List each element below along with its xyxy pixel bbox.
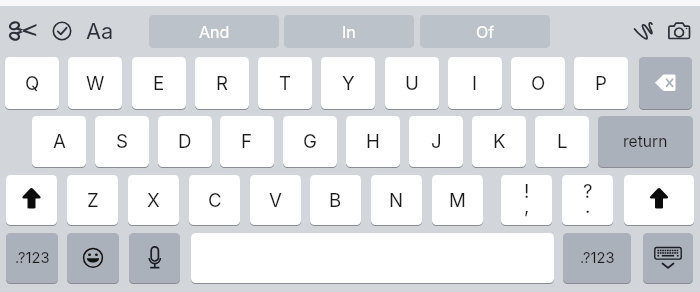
staticText: I bbox=[472, 72, 478, 95]
button[interactable]: .?123 bbox=[563, 233, 631, 283]
button[interactable]: U bbox=[385, 57, 439, 109]
staticText: K bbox=[493, 130, 506, 153]
button[interactable]: Q bbox=[5, 57, 59, 109]
staticText: And bbox=[199, 22, 230, 41]
button[interactable]: T bbox=[258, 57, 312, 109]
button[interactable]: Check bbox=[45, 14, 79, 48]
staticText: Aa bbox=[86, 18, 114, 44]
button[interactable]: X bbox=[128, 175, 179, 225]
button[interactable]: Y bbox=[321, 57, 375, 109]
button[interactable]: In bbox=[284, 15, 414, 48]
button[interactable]: I bbox=[448, 57, 502, 109]
staticText: .?123 bbox=[15, 249, 50, 267]
button[interactable]: W bbox=[68, 57, 122, 109]
button[interactable]: Shift bbox=[6, 175, 57, 225]
staticText: A bbox=[53, 130, 66, 153]
button[interactable]: J bbox=[409, 116, 463, 167]
button[interactable]: Of bbox=[420, 15, 550, 48]
button[interactable]: S bbox=[95, 116, 149, 167]
button[interactable]: M bbox=[432, 175, 483, 225]
staticText: D bbox=[178, 130, 192, 153]
staticText: X bbox=[147, 189, 160, 212]
staticText: U bbox=[405, 72, 419, 95]
staticText: R bbox=[216, 72, 229, 95]
button[interactable]: Emoji bbox=[67, 233, 119, 283]
staticText: T bbox=[279, 72, 292, 95]
staticText: ? bbox=[583, 180, 593, 203]
button[interactable]: L bbox=[535, 116, 589, 167]
staticText: J bbox=[431, 130, 442, 153]
button[interactable]: G bbox=[283, 116, 337, 167]
staticText: E bbox=[153, 72, 165, 95]
button[interactable]: A bbox=[32, 116, 86, 167]
button[interactable]: K bbox=[472, 116, 526, 167]
staticText: ! bbox=[524, 180, 530, 203]
button[interactable]: P bbox=[574, 57, 628, 109]
staticText: Q bbox=[25, 72, 40, 95]
button[interactable]: ! , bbox=[501, 175, 552, 225]
button[interactable]: ? . bbox=[562, 175, 613, 225]
staticText: Z bbox=[87, 189, 99, 212]
button[interactable]: D bbox=[158, 116, 212, 167]
staticText: B bbox=[329, 189, 342, 212]
button[interactable]: B bbox=[310, 175, 361, 225]
staticText: H bbox=[366, 130, 380, 153]
button[interactable]: C bbox=[189, 175, 240, 225]
button[interactable]: Hide keyboard bbox=[643, 233, 693, 283]
button[interactable]: E bbox=[132, 57, 186, 109]
button[interactable]: .?123 bbox=[6, 233, 58, 283]
button[interactable]: F bbox=[220, 116, 274, 167]
staticText: S bbox=[116, 130, 128, 153]
button[interactable]: Cut bbox=[5, 17, 41, 45]
staticText: N bbox=[389, 189, 404, 212]
button[interactable]: Voice input bbox=[129, 233, 180, 283]
staticText: W bbox=[86, 72, 105, 95]
staticText: F bbox=[241, 130, 253, 153]
button[interactable]: Z bbox=[67, 175, 118, 225]
button[interactable]: Aa bbox=[84, 14, 116, 48]
staticText: . bbox=[585, 195, 591, 218]
staticText: .?123 bbox=[580, 249, 615, 267]
button[interactable]: Handwriting bbox=[630, 20, 658, 42]
staticText: In bbox=[342, 22, 356, 41]
staticText: L bbox=[557, 130, 568, 153]
staticText: C bbox=[208, 189, 222, 212]
staticText: O bbox=[531, 72, 546, 95]
button[interactable]: V bbox=[250, 175, 301, 225]
staticText: P bbox=[595, 72, 607, 95]
button[interactable]: H bbox=[346, 116, 400, 167]
button[interactable]: O bbox=[511, 57, 565, 109]
staticText: Of bbox=[476, 22, 495, 41]
button[interactable]: Camera bbox=[664, 20, 694, 42]
button[interactable]: R bbox=[195, 57, 249, 109]
button[interactable]: N bbox=[371, 175, 422, 225]
staticText: V bbox=[269, 189, 282, 212]
button[interactable]: return bbox=[598, 116, 693, 167]
staticText: G bbox=[303, 130, 317, 153]
staticText: , bbox=[524, 195, 530, 218]
staticText: Y bbox=[342, 72, 355, 95]
button[interactable]: Shift bbox=[624, 175, 694, 225]
staticText: M bbox=[449, 189, 466, 212]
button[interactable]: And bbox=[149, 15, 279, 48]
staticText: return bbox=[623, 132, 668, 151]
button[interactable]: Backspace bbox=[639, 57, 692, 109]
